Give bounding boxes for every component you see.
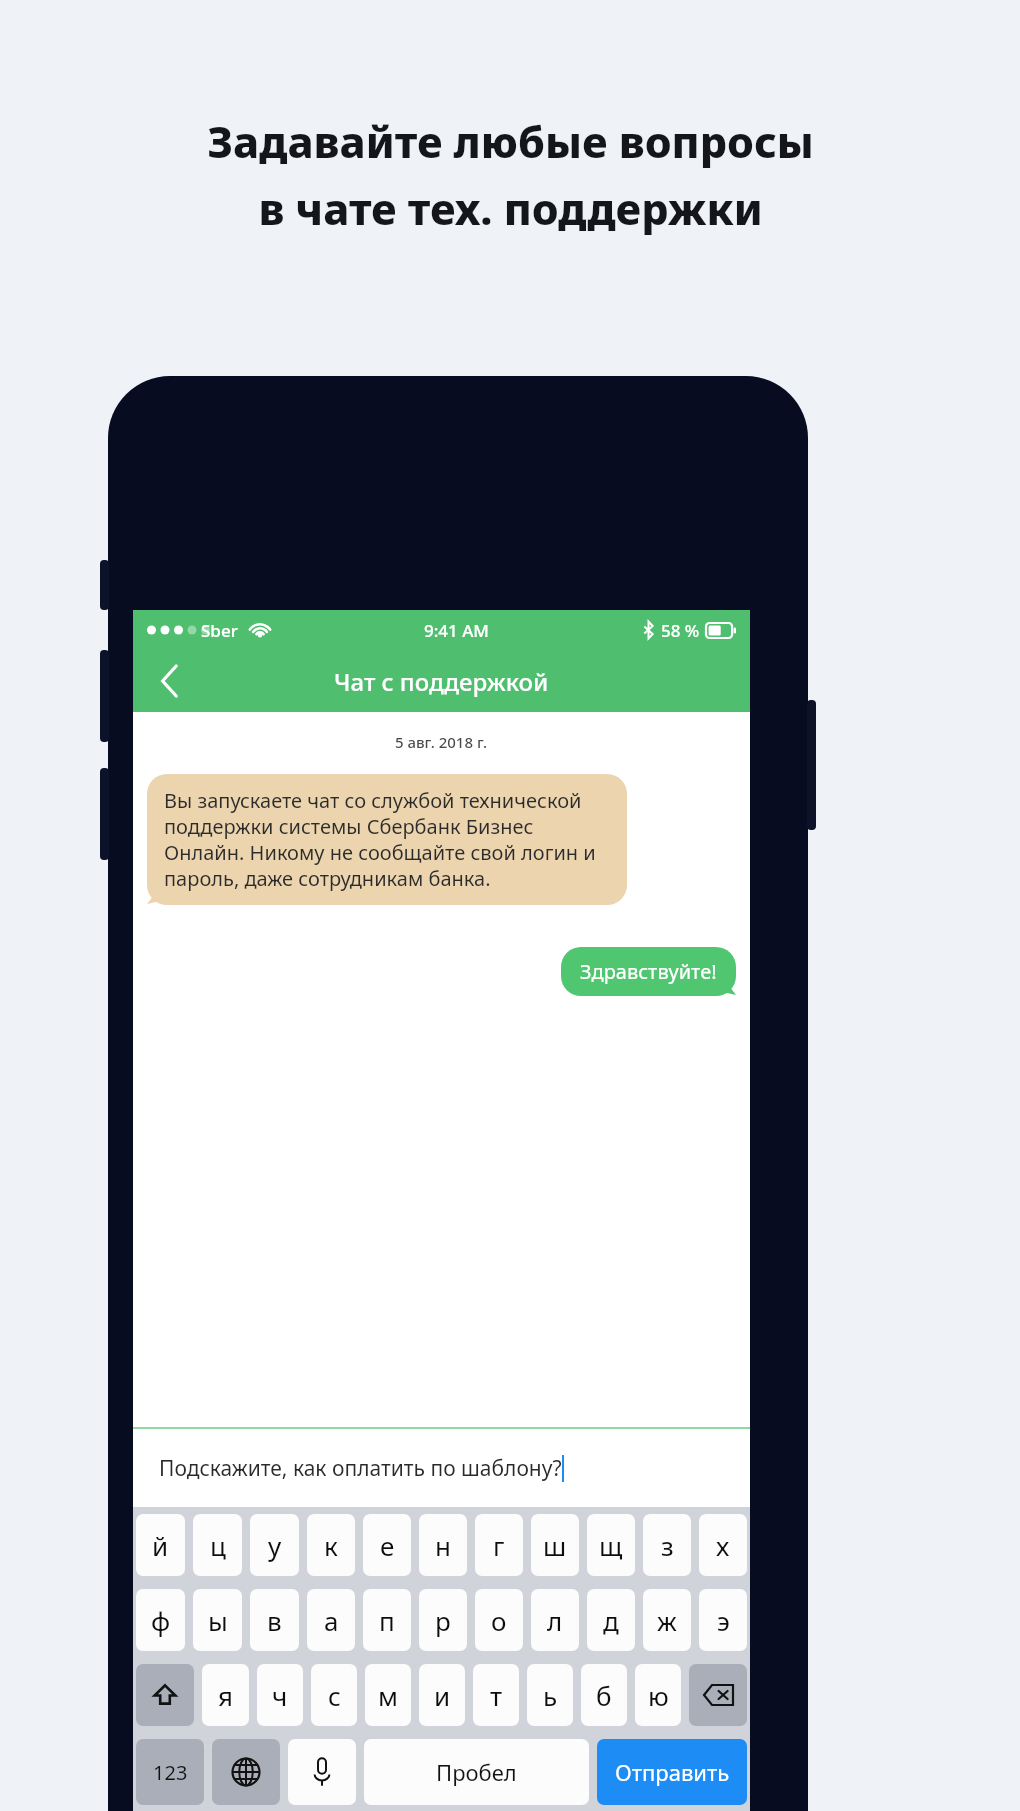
staticText: Подскажите, как оплатить по шаблону? [159, 1454, 562, 1483]
staticText: в [267, 1603, 282, 1638]
button[interactable]: ь [527, 1664, 573, 1726]
button[interactable]: ю [635, 1664, 681, 1726]
staticText: г [493, 1528, 505, 1563]
staticText: 9:41 AM [424, 619, 489, 642]
staticText: з [661, 1528, 674, 1563]
staticText: х [716, 1528, 730, 1563]
staticText: т [490, 1678, 503, 1713]
staticText: й [152, 1528, 169, 1563]
staticText: я [218, 1678, 234, 1713]
button[interactable]: Voice input [288, 1739, 356, 1805]
staticText: к [324, 1528, 338, 1563]
staticText: 123 [153, 1759, 188, 1786]
staticText: ц [210, 1528, 226, 1563]
staticText: ь [543, 1678, 558, 1713]
button[interactable]: Backspace [689, 1664, 747, 1726]
button[interactable]: т [473, 1664, 519, 1726]
staticText: р [435, 1603, 451, 1638]
button[interactable]: б [581, 1664, 627, 1726]
staticText: ы [208, 1603, 228, 1638]
staticText: Пробел [436, 1757, 517, 1787]
button[interactable]: г [475, 1514, 523, 1576]
button[interactable]: л [531, 1589, 579, 1651]
staticText: Чат с поддержкой [334, 665, 549, 698]
button[interactable]: п [363, 1589, 411, 1651]
button[interactable]: ф [136, 1589, 185, 1651]
staticText: с [328, 1678, 341, 1713]
staticText: а [324, 1603, 339, 1638]
staticText: щ [599, 1528, 623, 1563]
staticText: н [435, 1528, 451, 1563]
button[interactable]: м [365, 1664, 411, 1726]
button[interactable]: д [587, 1589, 635, 1651]
button[interactable]: Back [141, 653, 197, 709]
button[interactable]: ш [531, 1514, 579, 1576]
staticText: л [547, 1603, 563, 1638]
button[interactable]: й [136, 1514, 185, 1576]
staticText: м [378, 1678, 398, 1713]
button[interactable]: 123 [136, 1739, 204, 1805]
staticText: о [491, 1603, 507, 1638]
staticText: и [434, 1678, 451, 1713]
staticText: Вы запускаете чат со службой технической… [164, 787, 610, 892]
staticText: у [268, 1528, 282, 1563]
button[interactable]: Shift [136, 1664, 194, 1726]
button[interactable]: к [307, 1514, 355, 1576]
staticText: Sber [201, 619, 238, 642]
staticText: ю [648, 1678, 669, 1713]
staticText: ж [657, 1603, 677, 1638]
button[interactable]: р [419, 1589, 467, 1651]
button[interactable]: о [475, 1589, 523, 1651]
staticText: 58 % [661, 619, 700, 642]
button[interactable]: э [699, 1589, 747, 1651]
staticText: Отправить [615, 1757, 730, 1787]
button[interactable]: у [250, 1514, 299, 1576]
staticText: Здравствуйте! [580, 958, 717, 985]
button[interactable]: Здравствуйте! [561, 947, 736, 996]
button[interactable]: ы [193, 1589, 242, 1651]
button[interactable]: Отправить [597, 1739, 747, 1805]
staticText: д [603, 1603, 619, 1638]
staticText: б [596, 1678, 612, 1713]
button[interactable]: х [699, 1514, 747, 1576]
button[interactable]: Пробел [364, 1739, 589, 1805]
button[interactable]: щ [587, 1514, 635, 1576]
button[interactable]: ч [257, 1664, 303, 1726]
button[interactable]: з [643, 1514, 691, 1576]
staticText: п [379, 1603, 395, 1638]
staticText: ф [151, 1603, 171, 1638]
button[interactable]: а [307, 1589, 355, 1651]
button[interactable]: Change keyboard language [212, 1739, 280, 1805]
staticText: 5 авг. 2018 г. [395, 732, 488, 752]
button[interactable]: е [363, 1514, 411, 1576]
button[interactable]: я [202, 1664, 249, 1726]
button[interactable]: Вы запускаете чат со службой технической… [147, 774, 627, 905]
staticText: в чате тех. поддержки [258, 179, 763, 238]
staticText: Задавайте любые вопросы [207, 112, 814, 171]
staticText: ш [543, 1528, 567, 1563]
button[interactable]: и [419, 1664, 465, 1726]
staticText: ч [272, 1678, 288, 1713]
staticText: э [717, 1603, 730, 1638]
button[interactable]: в [250, 1589, 299, 1651]
button[interactable]: н [419, 1514, 467, 1576]
button[interactable]: с [311, 1664, 357, 1726]
staticText: е [380, 1528, 395, 1563]
button[interactable]: ж [643, 1589, 691, 1651]
button[interactable]: ц [193, 1514, 242, 1576]
